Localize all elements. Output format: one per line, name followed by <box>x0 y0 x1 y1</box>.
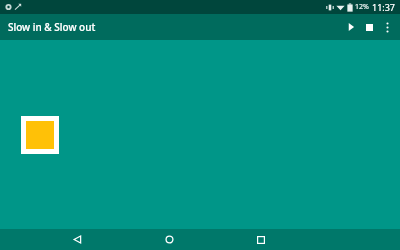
button[interactable]: Animated square <box>21 116 59 154</box>
button[interactable]: Recent apps <box>246 229 276 250</box>
button[interactable]: Stop <box>360 18 378 36</box>
staticText: 11:37 <box>372 1 396 13</box>
button[interactable]: Home <box>154 229 184 250</box>
button[interactable]: Play <box>342 18 360 36</box>
staticText: 12% <box>355 2 369 12</box>
staticText: Slow in & Slow out <box>8 20 96 34</box>
button[interactable]: Back <box>62 229 92 250</box>
button[interactable]: More options <box>378 18 396 36</box>
